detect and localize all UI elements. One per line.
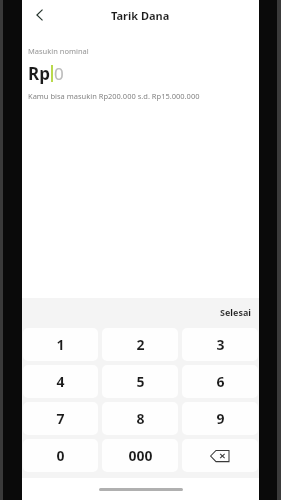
- button[interactable]: 000: [102, 439, 178, 472]
- button[interactable]: 4: [23, 365, 98, 398]
- button[interactable]: Selesai: [212, 302, 259, 322]
- staticText: 9: [216, 409, 225, 428]
- button[interactable]: 5: [102, 365, 178, 398]
- staticText: Rp: [28, 62, 50, 85]
- staticText: 2: [136, 335, 145, 354]
- button[interactable]: 8: [102, 402, 178, 435]
- button[interactable]: 9: [182, 402, 258, 435]
- staticText: Tarik Dana: [111, 8, 170, 23]
- button[interactable]: 3: [182, 328, 258, 361]
- button[interactable]: 7: [23, 402, 98, 435]
- staticText: Kamu bisa masukin Rp200.000 s.d. Rp15.00…: [28, 91, 200, 101]
- staticText: 0: [56, 446, 65, 465]
- staticText: 0: [54, 62, 64, 85]
- button[interactable]: 2: [102, 328, 178, 361]
- button[interactable]: 6: [182, 365, 258, 398]
- staticText: Selesai: [220, 306, 251, 318]
- button[interactable]: Back: [26, 1, 54, 29]
- staticText: Masukin nominal: [28, 46, 89, 56]
- staticText: 6: [216, 372, 225, 391]
- staticText: 1: [56, 335, 65, 354]
- staticText: 4: [56, 372, 65, 391]
- staticText: 3: [216, 335, 225, 354]
- button[interactable]: 1: [23, 328, 98, 361]
- staticText: 8: [136, 409, 145, 428]
- staticText: 5: [136, 372, 145, 391]
- staticText: 7: [56, 409, 65, 428]
- button[interactable]: Backspace: [182, 439, 258, 472]
- button[interactable]: 0: [23, 439, 98, 472]
- staticText: 000: [128, 446, 153, 465]
